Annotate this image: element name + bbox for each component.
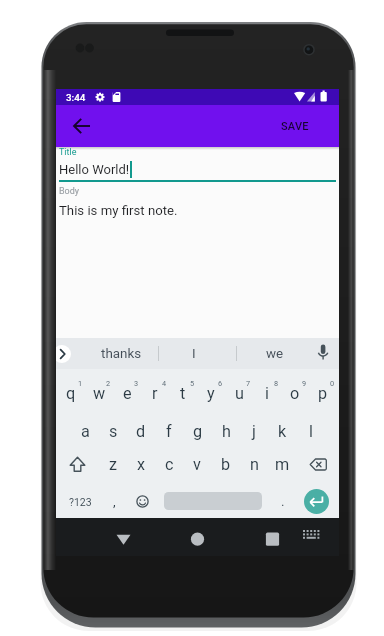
staticText: g — [193, 422, 203, 441]
staticText: Body — [59, 186, 80, 197]
staticText: 2 — [106, 379, 111, 388]
staticText: c — [165, 455, 174, 474]
button[interactable]: q — [57, 376, 85, 411]
staticText: thanks — [101, 346, 142, 362]
button[interactable]: d — [127, 414, 155, 449]
button[interactable]: w — [85, 376, 113, 411]
staticText: I — [192, 346, 196, 362]
staticText: v — [193, 455, 201, 474]
staticText: Title — [59, 147, 77, 158]
staticText: 6 — [218, 379, 223, 388]
button[interactable]: o — [281, 376, 309, 411]
button[interactable]: k — [268, 414, 296, 449]
button[interactable]: c — [155, 447, 183, 482]
staticText: q — [66, 384, 76, 403]
staticText: 4 — [162, 379, 167, 388]
button[interactable]: j — [240, 414, 268, 449]
staticText: k — [278, 422, 287, 441]
staticText: 1 — [78, 379, 83, 388]
staticText: j — [252, 422, 256, 441]
staticText: , — [113, 493, 116, 509]
staticText: 3:44 — [66, 92, 86, 103]
staticText: This is my first note. — [59, 203, 178, 218]
staticText: 9 — [302, 379, 307, 388]
staticText: f — [166, 422, 172, 441]
button[interactable]: y — [197, 376, 225, 411]
button[interactable]: z — [99, 447, 127, 482]
staticText: a — [81, 422, 90, 441]
button[interactable] — [110, 526, 137, 548]
button[interactable]: l — [297, 414, 325, 449]
button[interactable]: m — [268, 447, 296, 482]
staticText: 7 — [246, 379, 251, 388]
button[interactable]: ?123 — [63, 485, 97, 518]
staticText: z — [109, 455, 118, 474]
button[interactable] — [304, 489, 329, 514]
button[interactable]: thanks — [101, 339, 142, 368]
staticText: . — [281, 493, 285, 509]
button[interactable] — [184, 526, 211, 548]
staticText: SAVE — [281, 120, 309, 133]
staticText: m — [275, 455, 290, 474]
button[interactable] — [133, 492, 152, 511]
button[interactable]: s — [99, 414, 127, 449]
button[interactable]: t — [169, 376, 197, 411]
staticText: 0 — [330, 379, 335, 388]
button[interactable] — [63, 450, 92, 479]
button[interactable] — [164, 492, 262, 510]
staticText: i — [265, 384, 269, 403]
staticText: e — [123, 384, 132, 403]
staticText: ?123 — [69, 496, 92, 508]
button[interactable] — [303, 450, 332, 479]
button[interactable]: g — [184, 414, 212, 449]
staticText: b — [221, 455, 231, 474]
button[interactable]: , — [103, 484, 125, 517]
button[interactable]: i — [253, 376, 281, 411]
staticText: w — [93, 384, 106, 403]
button[interactable]: b — [212, 447, 240, 482]
button[interactable]: I — [184, 339, 204, 368]
staticText: we — [266, 346, 284, 362]
staticText: s — [109, 422, 118, 441]
staticText: y — [207, 384, 215, 403]
button[interactable] — [314, 344, 336, 362]
staticText: 5 — [190, 379, 195, 388]
staticText: h — [222, 422, 231, 441]
staticText: l — [309, 422, 313, 441]
staticText: x — [137, 455, 146, 474]
staticText: n — [250, 455, 259, 474]
staticText: 8 — [274, 379, 279, 388]
staticText: d — [136, 422, 146, 441]
button[interactable] — [56, 345, 71, 363]
button[interactable]: SAVE — [274, 112, 316, 140]
button[interactable]: h — [212, 414, 240, 449]
button[interactable] — [301, 527, 323, 547]
staticText: o — [290, 384, 300, 403]
button[interactable]: n — [240, 447, 268, 482]
button[interactable]: a — [71, 414, 99, 449]
button[interactable]: u — [225, 376, 253, 411]
button[interactable]: we — [262, 339, 288, 368]
staticText: r — [152, 384, 158, 403]
button[interactable] — [66, 110, 98, 142]
button[interactable]: e — [113, 376, 141, 411]
staticText: p — [318, 384, 328, 403]
staticText: u — [235, 384, 244, 403]
button[interactable]: . — [272, 484, 294, 517]
button[interactable]: r — [141, 376, 169, 411]
button[interactable] — [56, 148, 339, 183]
button[interactable] — [56, 185, 339, 225]
button[interactable]: f — [155, 414, 183, 449]
button[interactable]: p — [309, 376, 337, 411]
staticText: 3 — [134, 379, 139, 388]
staticText: Hello World! — [59, 162, 130, 177]
button[interactable]: v — [183, 447, 211, 482]
button[interactable] — [259, 526, 286, 548]
button[interactable]: x — [127, 447, 155, 482]
staticText: t — [180, 384, 186, 403]
